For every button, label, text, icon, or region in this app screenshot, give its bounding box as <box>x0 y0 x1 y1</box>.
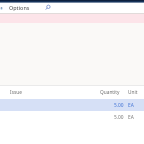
staticText: Unit <box>128 89 138 96</box>
staticText: Options <box>9 4 30 11</box>
staticText: EA <box>128 102 134 109</box>
staticText: 5.00 <box>114 114 124 121</box>
button[interactable]: 5.00 <box>0 111 144 123</box>
staticText: 5.00 <box>114 102 124 109</box>
button[interactable]: Search <box>43 3 51 11</box>
staticText: Quantity <box>100 89 120 96</box>
button[interactable]: Navigate <box>0 6 3 10</box>
button[interactable]: Options <box>9 4 30 11</box>
staticText: Issue <box>10 89 22 96</box>
button[interactable]: 5.00 <box>0 99 144 111</box>
staticText: EA <box>128 114 134 121</box>
